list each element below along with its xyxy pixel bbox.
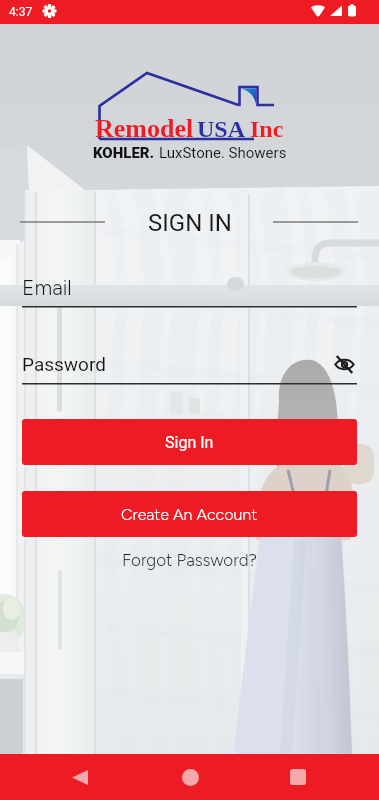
staticText: KOHLER. — [93, 144, 155, 162]
staticText: Email — [22, 275, 72, 300]
staticText: 4:37 — [9, 5, 33, 19]
button[interactable]: Home — [166, 754, 214, 800]
button[interactable]: Back — [56, 754, 104, 800]
staticText: Sign In — [165, 433, 214, 452]
button[interactable]: Recent apps — [274, 754, 322, 800]
staticText: Remodel — [95, 114, 194, 143]
button[interactable]: Create An Account — [22, 491, 357, 537]
staticText: Inc — [250, 116, 284, 143]
staticText: SIGN IN — [148, 209, 232, 237]
button[interactable]: Sign In — [22, 419, 357, 465]
staticText: LuxStone. Showers — [159, 144, 287, 162]
button[interactable]: Show password — [331, 351, 357, 377]
staticText: Create An Account — [121, 505, 258, 524]
staticText: Password — [22, 353, 106, 375]
staticText: USA — [197, 116, 246, 143]
button[interactable]: Forgot Password? — [0, 550, 379, 570]
